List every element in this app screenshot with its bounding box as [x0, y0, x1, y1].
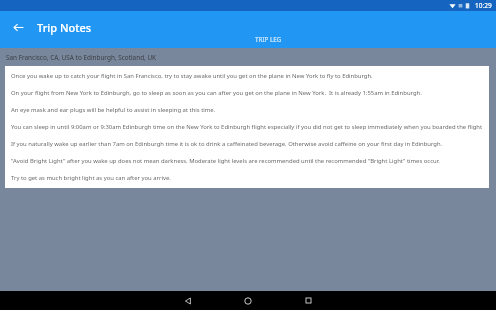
staticText: Once you wake up to catch your flight in… [11, 72, 373, 80]
button[interactable]: Once you wake up to catch your flight in… [5, 66, 489, 188]
staticText: You can sleep in until 9:00am or 9:30am … [11, 123, 483, 131]
staticText: If you naturally wake up earlier than 7a… [11, 140, 443, 148]
staticText: Trip Notes [37, 20, 92, 35]
button[interactable]: Back [173, 291, 203, 310]
staticText: TRIP LEG [255, 35, 282, 43]
staticText: On your flight from New York to Edinburg… [11, 89, 422, 97]
button[interactable]: TRIP LEG [40, 35, 496, 48]
button[interactable]: Recent apps [293, 291, 323, 310]
staticText: San Francisco, CA, USA to Edinburgh, Sco… [6, 53, 157, 62]
staticText: Try to get as much bright light as you c… [11, 174, 171, 182]
staticText: 10:29 [475, 1, 492, 10]
staticText: "Avoid Bright Light" after you wake up d… [11, 157, 440, 165]
button[interactable]: Back [8, 17, 28, 37]
staticText: An eye mask and ear plugs will be helpfu… [11, 106, 216, 114]
button[interactable]: Home [233, 291, 263, 310]
